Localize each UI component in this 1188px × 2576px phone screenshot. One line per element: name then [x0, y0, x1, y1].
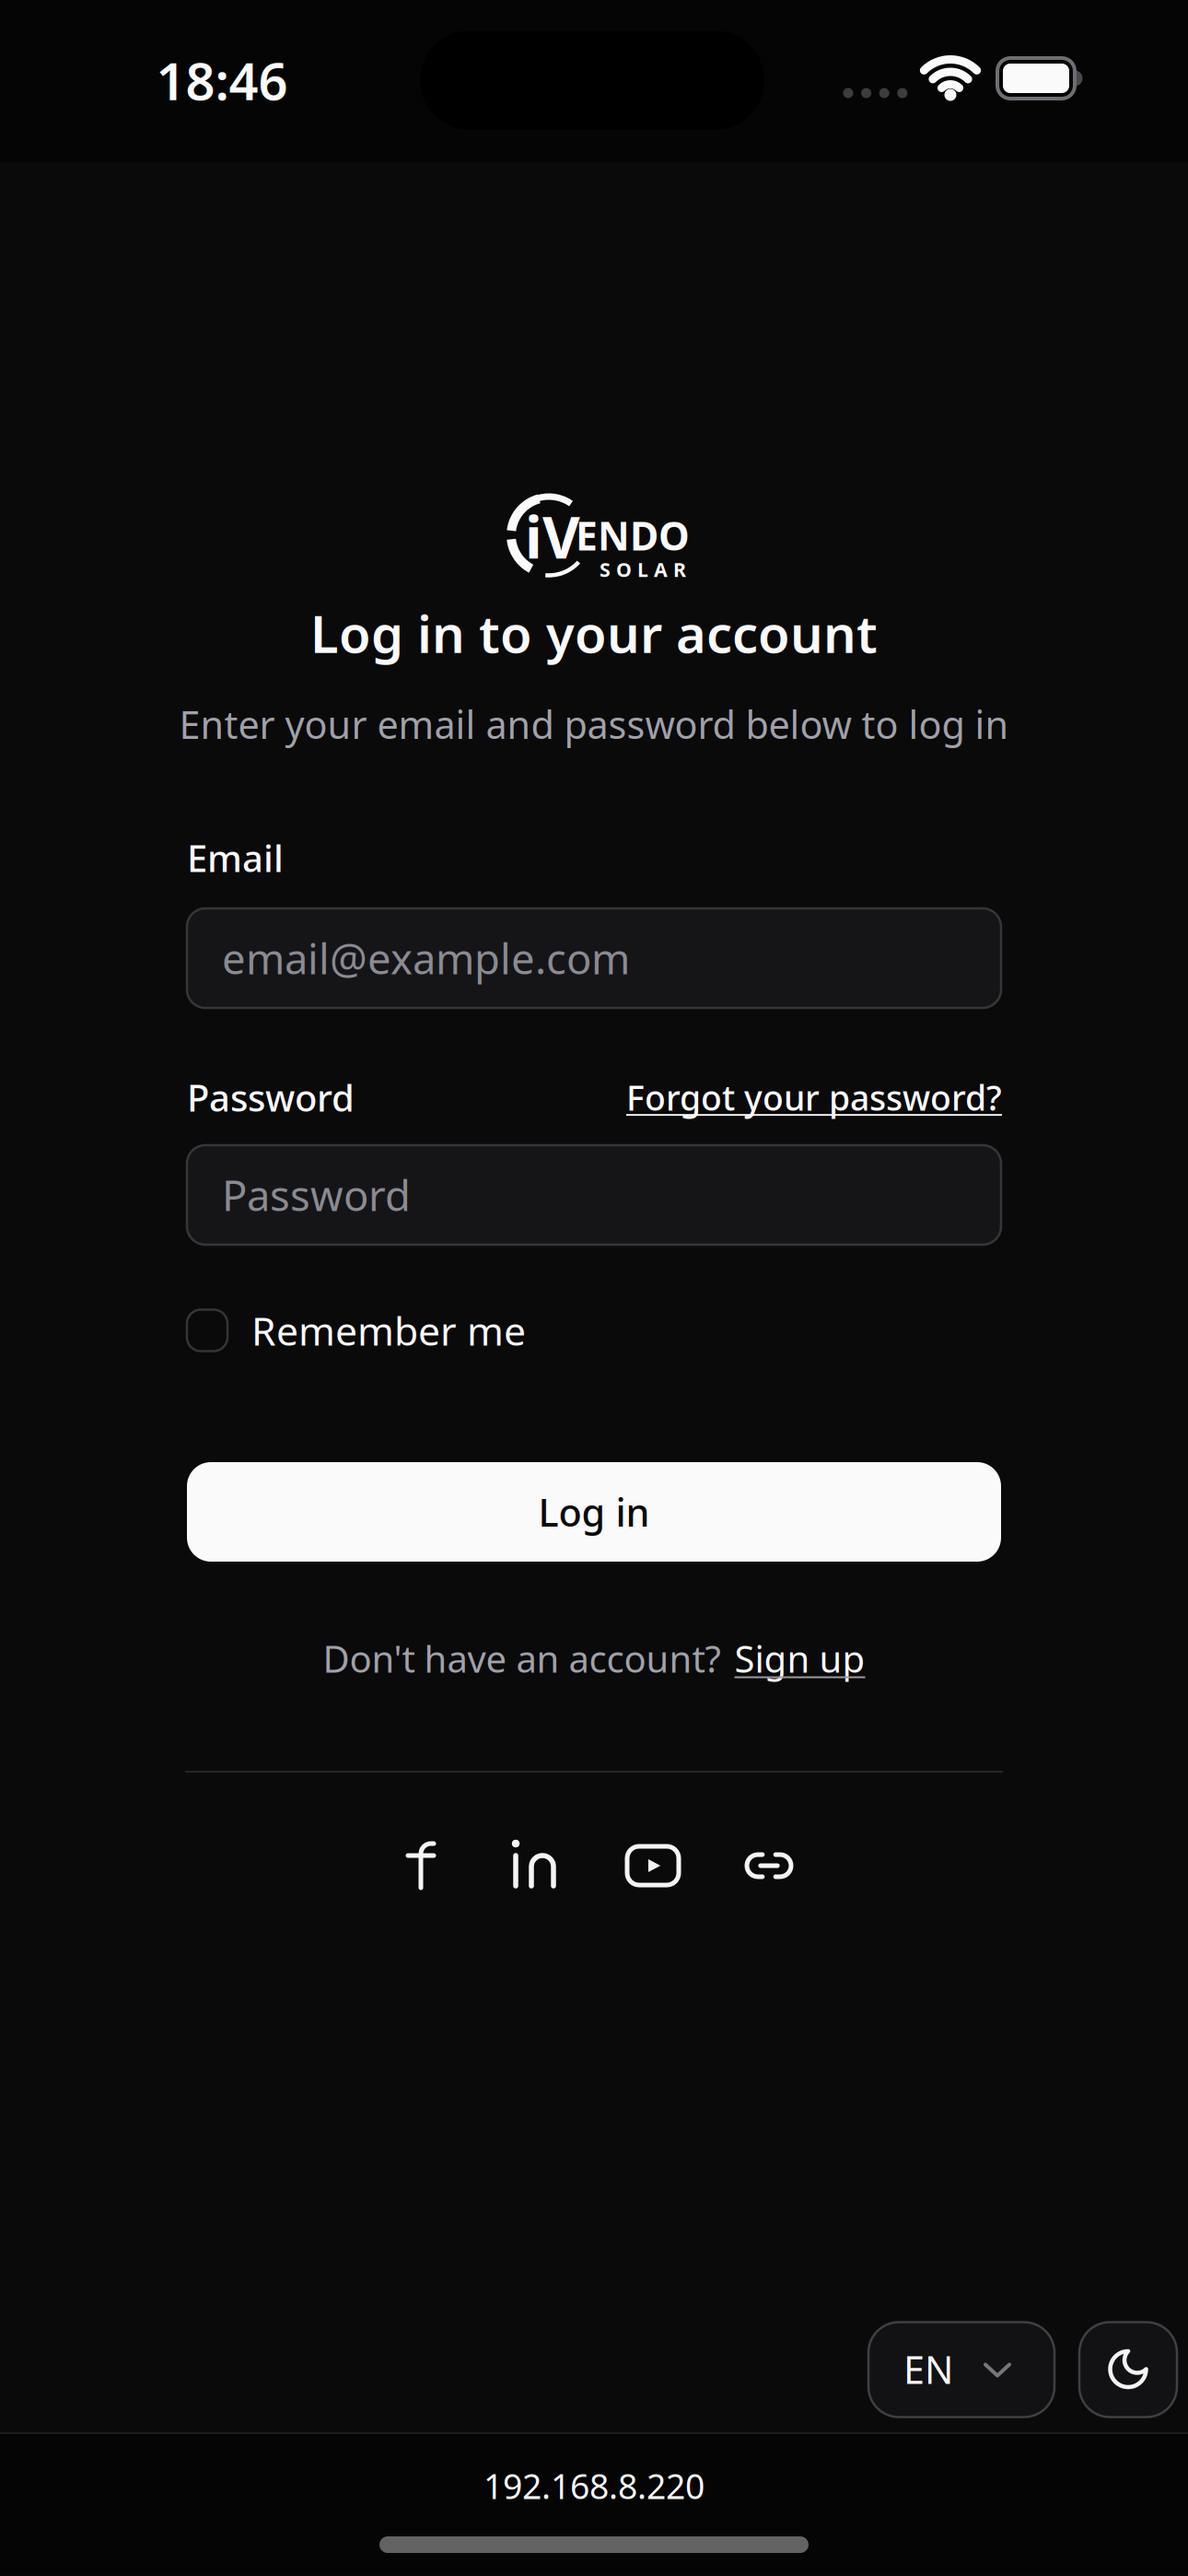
staticText: Password [222, 1167, 411, 1223]
button[interactable] [498, 1829, 572, 1903]
staticText: Enter your email and password below to l… [179, 699, 1009, 749]
staticText: email@example.com [222, 930, 630, 986]
staticText: Log in [538, 1487, 650, 1537]
staticText: Sign up [734, 1634, 865, 1683]
staticText: Email [187, 833, 284, 882]
button[interactable]: email@example.com [187, 908, 1001, 1008]
button[interactable]: Sign up [734, 1634, 865, 1683]
button[interactable] [732, 1829, 806, 1903]
staticText: EN [903, 2344, 953, 2395]
staticText: Don't have an account? [323, 1634, 721, 1683]
staticText: SOLAR [600, 556, 686, 582]
staticText: ENDO [576, 509, 690, 561]
button[interactable] [384, 1829, 458, 1903]
staticText: Password [187, 1073, 355, 1122]
button[interactable] [1079, 2322, 1177, 2417]
button[interactable] [616, 1829, 690, 1903]
staticText: 18:46 [156, 46, 288, 114]
staticText: Remember me [251, 1304, 526, 1357]
button[interactable]: Password [187, 1145, 1001, 1245]
staticText: Forgot your password? [626, 1074, 1002, 1120]
button[interactable]: Remember me [187, 1304, 526, 1357]
staticText: iV [525, 498, 580, 575]
staticText: 192.168.8.220 [483, 2463, 705, 2509]
button[interactable]: EN [868, 2322, 1054, 2417]
staticText: Log in to your account [310, 599, 878, 667]
button[interactable]: Log in [187, 1462, 1001, 1562]
button[interactable]: Forgot your password? [626, 1074, 1002, 1120]
